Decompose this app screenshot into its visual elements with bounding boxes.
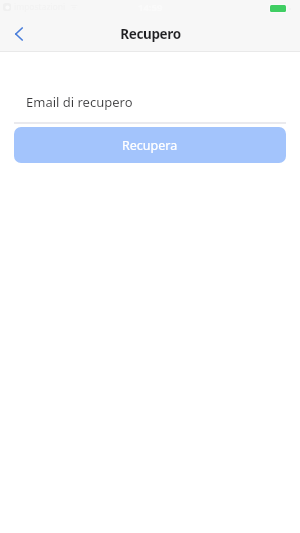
- staticText: Email di recupero: [26, 93, 133, 111]
- staticText: Recupero: [120, 25, 181, 43]
- button[interactable]: Email di recupero: [14, 88, 286, 124]
- staticText: Recupera: [122, 137, 178, 154]
- button[interactable]: Recupera: [14, 127, 286, 163]
- button[interactable]: Back: [0, 15, 36, 51]
